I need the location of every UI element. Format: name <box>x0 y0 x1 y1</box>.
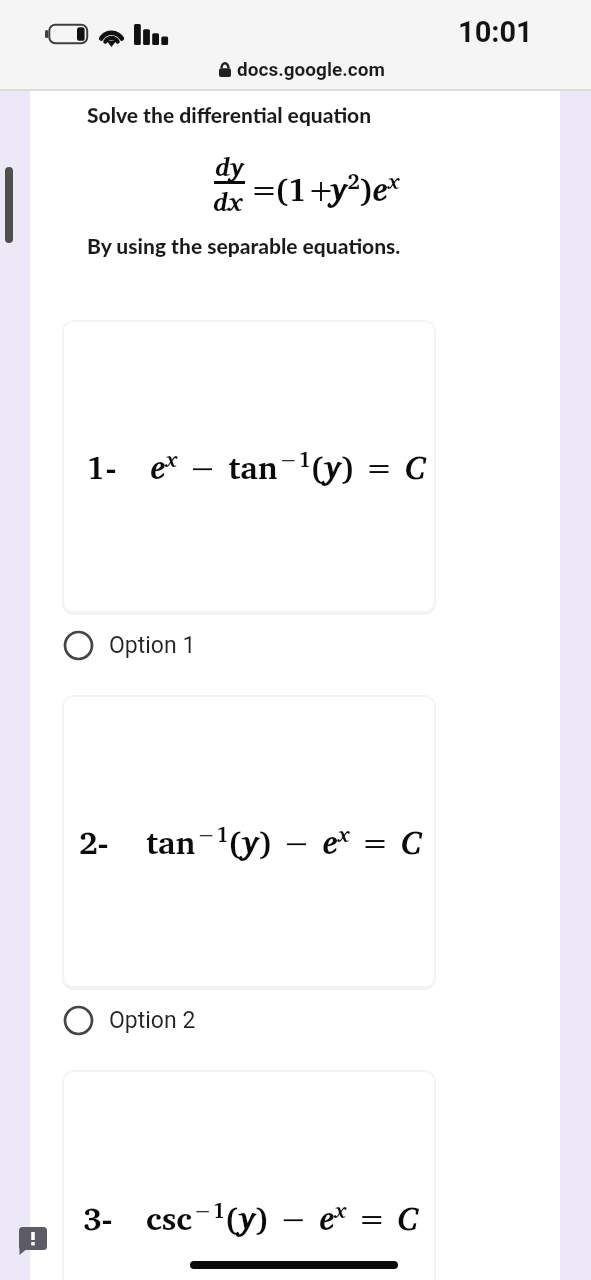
staticText: tan−1(y) − ex = C <box>146 816 422 868</box>
staticText: dx <box>213 180 243 223</box>
staticText: Solve the differential equation <box>87 102 372 127</box>
staticText: docs.google.com <box>237 58 385 80</box>
staticText: 2- <box>79 816 109 868</box>
button[interactable]: Option 2 <box>62 998 402 1042</box>
staticText: ex − tan−1(y) = C <box>150 441 426 493</box>
button[interactable]: Report issue <box>19 1227 47 1255</box>
button[interactable] <box>63 696 435 987</box>
staticText: dy <box>215 145 244 188</box>
button[interactable] <box>63 1071 435 1280</box>
staticText: + <box>305 163 337 215</box>
staticText: 10:01 <box>458 15 533 49</box>
staticText: = <box>248 163 280 215</box>
staticText: (1 <box>276 163 308 215</box>
staticText: 3- <box>83 1192 113 1244</box>
staticText: csc−1(y) − ex = C <box>146 1192 419 1244</box>
staticText: y2)ex <box>330 163 400 215</box>
staticText: By using the separable equations. <box>87 233 401 258</box>
button[interactable]: Option 1 <box>62 623 402 667</box>
staticText: Option 1 <box>109 632 196 659</box>
button[interactable] <box>63 321 435 612</box>
staticText: 1- <box>87 441 117 493</box>
staticText: Option 2 <box>109 1007 196 1034</box>
button[interactable]: Site information, docs.google.com <box>219 58 385 80</box>
